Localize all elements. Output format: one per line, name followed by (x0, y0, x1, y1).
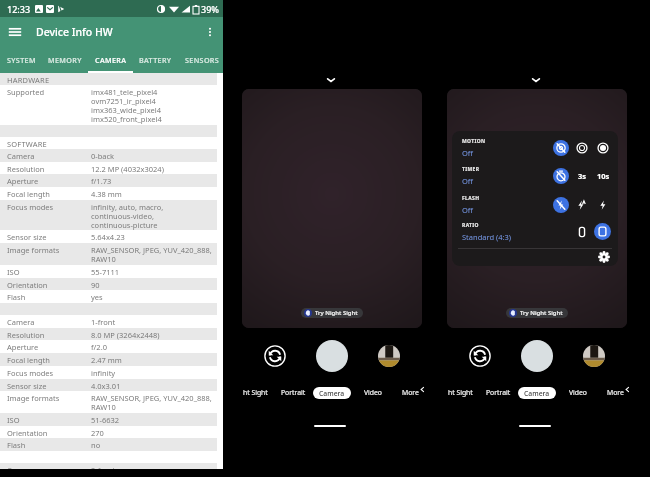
button[interactable]: Option 3 (595, 197, 611, 213)
button[interactable]: Focal length (0, 353, 223, 366)
staticText: 1-front (91, 317, 116, 327)
staticText: Try Night Sight (315, 309, 358, 317)
button[interactable]: Shutter (316, 340, 348, 372)
staticText: Aperture (7, 176, 39, 186)
staticText: 270 (91, 428, 104, 438)
button[interactable]: Try Night Sight (506, 308, 568, 318)
button[interactable]: Image formats (0, 391, 223, 413)
button[interactable]: Expand options (325, 74, 337, 86)
staticText: imx481_tele_pixel4 ovm7251_ir_pixel4 imx… (91, 87, 162, 124)
button[interactable]: Option 2 (574, 140, 590, 156)
button[interactable]: More (402, 388, 419, 397)
staticText: 0-back (91, 151, 115, 161)
button[interactable]: Focal length (0, 187, 223, 200)
button[interactable]: Focus modes (0, 366, 223, 379)
button[interactable]: Image formats (0, 243, 223, 265)
staticText: ht Sight (243, 388, 268, 397)
button[interactable]: Focus modes (0, 200, 223, 231)
button[interactable]: Shutter (521, 340, 553, 372)
staticText: ht Sight (448, 388, 473, 397)
button[interactable]: SYSTEM (0, 47, 42, 73)
button[interactable]: Camera (0, 315, 223, 328)
staticText: BATTERY (139, 55, 172, 65)
staticText: Orientation (7, 428, 48, 438)
staticText: RAW_SENSOR, JPEG, YUV_420_888, RAW10 (91, 245, 212, 264)
button[interactable]: ht Sight (243, 388, 268, 397)
button[interactable]: BATTERY (133, 47, 177, 73)
button[interactable]: More options (202, 24, 218, 40)
button[interactable]: Switch camera (469, 345, 491, 367)
button[interactable]: Expand options (530, 74, 542, 86)
button[interactable]: Resolution (0, 162, 223, 175)
button[interactable]: Supported (0, 85, 223, 125)
button[interactable]: Resolution (0, 328, 223, 341)
staticText: 4.0x3.01 (91, 381, 121, 391)
staticText: 5.64x4.23 (91, 232, 125, 242)
button[interactable]: Gallery (378, 345, 400, 367)
button[interactable]: Video (569, 388, 587, 397)
button[interactable]: HARDWARE (0, 73, 223, 85)
button[interactable]: Camera (0, 149, 223, 162)
staticText: 8.0 MP (3264x2448) (91, 330, 160, 340)
staticText: More (607, 388, 624, 397)
button[interactable]: MEMORY (43, 47, 87, 73)
button[interactable]: Full ratio (574, 224, 590, 240)
staticText: Focus modes (7, 202, 54, 212)
button[interactable]: Off (553, 140, 569, 156)
button[interactable]: Camera (0, 463, 223, 476)
button[interactable]: ISO (0, 413, 223, 426)
button[interactable]: ht Sight (448, 388, 473, 397)
button[interactable]: Flash (0, 290, 223, 303)
staticText: Camera (7, 317, 35, 327)
staticText: 51-6632 (91, 415, 120, 425)
button[interactable]: Flash (0, 438, 223, 451)
staticText: Flash (7, 440, 26, 450)
button[interactable]: Settings (598, 251, 610, 263)
staticText: Sensor size (7, 232, 47, 242)
staticText: SOFTWARE (7, 139, 47, 149)
button[interactable]: Camera (313, 387, 351, 399)
button[interactable]: Option 3 (595, 140, 611, 156)
button[interactable]: Gallery (583, 345, 605, 367)
staticText: Camera (7, 465, 35, 475)
staticText: 10s (597, 171, 610, 181)
staticText: 12.2 MP (4032x3024) (91, 164, 164, 174)
button[interactable]: Aperture (0, 174, 223, 187)
button[interactable]: Orientation (0, 426, 223, 439)
button[interactable]: Switch camera (264, 345, 286, 367)
button[interactable] (0, 125, 223, 137)
staticText: Camera (524, 389, 550, 398)
button[interactable]: Orientation (0, 278, 223, 291)
staticText: SENSORS (185, 55, 220, 65)
staticText: ISO (7, 267, 20, 277)
button[interactable]: SENSORS (180, 47, 224, 73)
button[interactable]: Sensor size (0, 379, 223, 392)
staticText: 4.38 mm (91, 189, 122, 199)
button[interactable]: Off (553, 197, 569, 213)
button[interactable]: Camera (518, 387, 556, 399)
button[interactable]: More (607, 388, 624, 397)
button[interactable]: Menu (5, 22, 25, 42)
staticText: Image formats (7, 245, 60, 255)
button[interactable]: Try Night Sight (301, 308, 363, 318)
button[interactable]: Sensor size (0, 230, 223, 243)
staticText: Focus modes (7, 368, 54, 378)
button[interactable]: Portrait (486, 388, 511, 397)
staticText: Device Info HW (36, 25, 113, 39)
button[interactable]: CAMERA (89, 47, 133, 73)
staticText: TIMER (462, 166, 480, 173)
button[interactable]: Option 2 (574, 197, 590, 213)
button[interactable]: Option 3 (595, 168, 611, 184)
button[interactable]: Portrait (281, 388, 306, 397)
button[interactable]: Video (364, 388, 382, 397)
button[interactable] (0, 303, 223, 315)
button[interactable]: Standard 4:3 (594, 223, 611, 240)
button[interactable]: Option 2 (574, 168, 590, 184)
button[interactable]: Aperture (0, 340, 223, 353)
staticText: SYSTEM (7, 55, 36, 65)
button[interactable]: ISO (0, 265, 223, 278)
staticText: 12:33 (7, 3, 31, 15)
button[interactable]: SOFTWARE (0, 137, 223, 149)
button[interactable]: Off (553, 168, 569, 184)
